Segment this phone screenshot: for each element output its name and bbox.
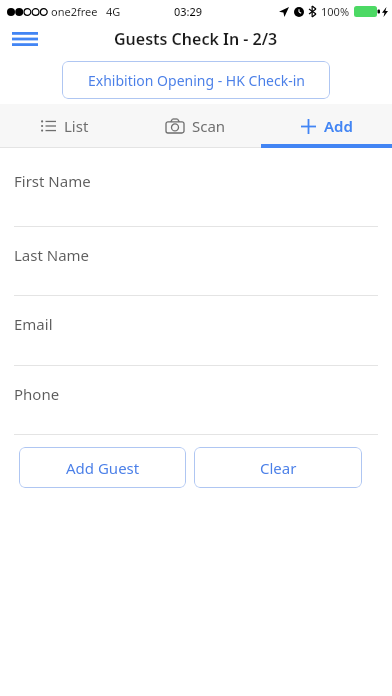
staticText: Guests Check In - 2/3: [114, 28, 278, 50]
staticText: Email: [14, 314, 53, 334]
staticText: 4G: [106, 4, 121, 19]
button[interactable]: Add: [261, 104, 392, 148]
button[interactable]: Add Guest: [19, 447, 186, 488]
staticText: Add Guest: [66, 458, 140, 478]
button[interactable]: Clear: [194, 447, 362, 488]
staticText: Scan: [192, 116, 226, 136]
button[interactable]: Last Name: [0, 227, 392, 296]
staticText: one2free: [51, 4, 98, 19]
staticText: 03:29: [174, 4, 203, 19]
staticText: Phone: [14, 384, 60, 404]
staticText: Add: [324, 116, 353, 136]
button[interactable]: Menu: [6, 22, 44, 56]
button[interactable]: Phone: [0, 366, 392, 435]
button[interactable]: Scan: [130, 104, 261, 148]
staticText: Clear: [260, 458, 297, 478]
button[interactable]: First Name: [0, 148, 392, 227]
staticText: Last Name: [14, 245, 90, 265]
button[interactable]: List: [0, 104, 130, 148]
button[interactable]: Email: [0, 296, 392, 366]
staticText: Exhibition Opening - HK Check-in: [88, 71, 305, 90]
button[interactable]: Exhibition Opening - HK Check-in: [62, 61, 330, 99]
staticText: First Name: [14, 171, 91, 191]
staticText: 100%: [321, 4, 350, 19]
staticText: List: [64, 116, 89, 136]
